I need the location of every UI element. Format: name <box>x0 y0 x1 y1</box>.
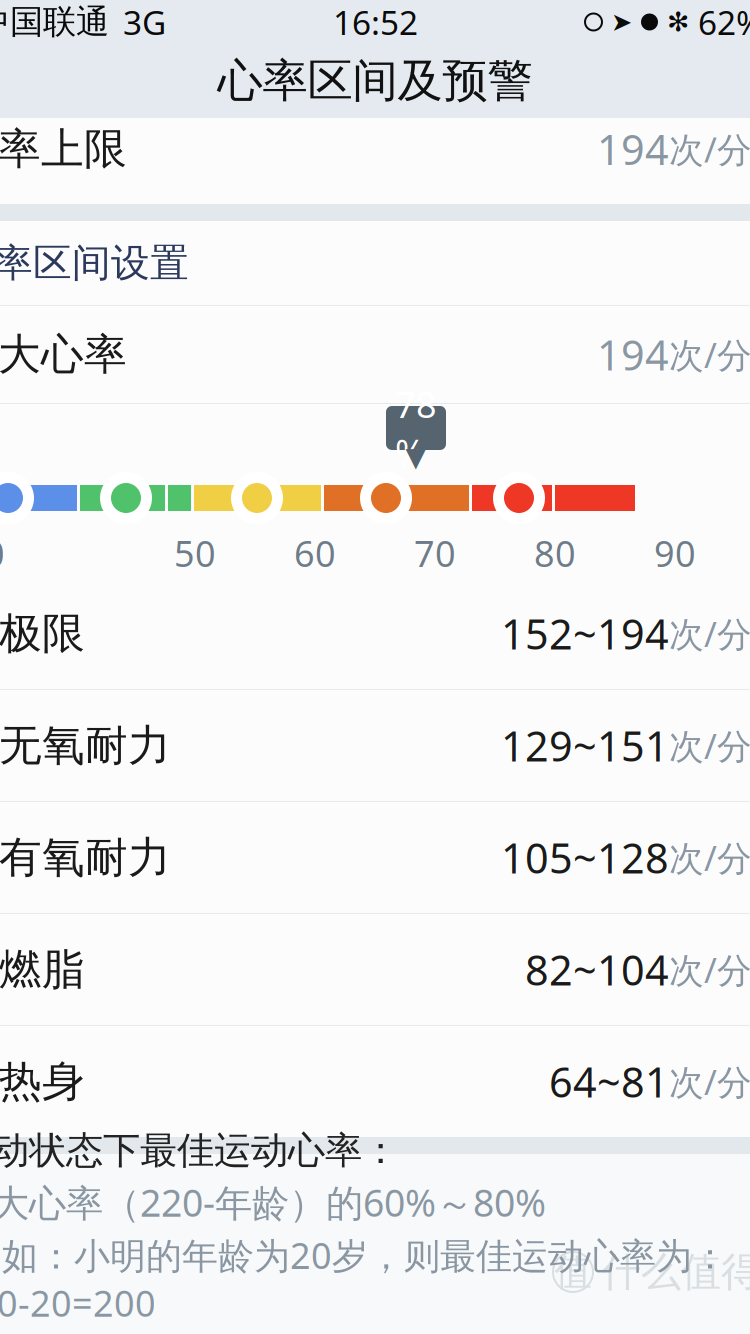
staticText: ✻ <box>667 7 689 37</box>
button[interactable]: 热身 <box>0 1026 750 1137</box>
staticText: ▼ <box>405 442 426 472</box>
staticText: 燃脂 <box>0 943 85 996</box>
staticText: 194 <box>597 122 669 176</box>
staticText: ➤ <box>611 8 632 36</box>
staticText: 62% <box>698 0 750 44</box>
staticText: 16:52 <box>333 0 418 44</box>
staticText: 次/分 <box>669 126 750 172</box>
staticText: 心率区间设置 <box>0 239 189 287</box>
staticText: 50 <box>174 529 216 577</box>
staticText: 64~81 <box>549 1054 669 1109</box>
staticText: 次/分 <box>669 834 750 880</box>
staticText: 中国联通 <box>0 1 109 42</box>
staticText: 105~128 <box>501 830 669 885</box>
staticText: 最大心率（220-年龄）的60%～80% <box>0 1177 546 1227</box>
button[interactable]: 燃脂 <box>0 914 750 1025</box>
staticText: 什么值得买 <box>601 1247 750 1296</box>
staticText: 80 <box>534 529 576 577</box>
staticText: 次/分 <box>669 946 750 992</box>
button[interactable]: 最大心率 <box>0 306 750 403</box>
staticText: 3G <box>123 0 166 44</box>
staticText: 热身 <box>0 1055 85 1108</box>
staticText: 运动状态下最佳运动心率： <box>0 1128 399 1174</box>
staticText: 次/分 <box>669 722 750 768</box>
staticText: 30 <box>0 529 5 577</box>
button[interactable]: 心率上限 <box>0 118 750 180</box>
button[interactable]: 无氧耐力 <box>0 690 750 801</box>
staticText: 152~194 <box>501 606 669 661</box>
staticText: 有氧耐力 <box>0 831 171 884</box>
staticText: 194 <box>597 327 669 382</box>
staticText: 例如：小明的年龄为20岁，则最佳运动心率为：220-20=200 <box>0 1231 728 1327</box>
staticText: 90 <box>654 529 696 577</box>
staticText: 60 <box>294 529 336 577</box>
staticText: 值 <box>554 1249 591 1295</box>
staticText: 心率区间及预警 <box>217 53 532 109</box>
button[interactable]: 极限 <box>0 578 750 689</box>
staticText: 78% <box>395 380 437 476</box>
button[interactable]: 有氧耐力 <box>0 802 750 913</box>
staticText: 70 <box>414 529 456 577</box>
staticText: 129~151 <box>501 718 669 773</box>
staticText: 次/分 <box>669 1058 750 1104</box>
staticText: 心率上限 <box>0 123 127 175</box>
staticText: 最大心率 <box>0 328 127 381</box>
staticText: 无氧耐力 <box>0 719 171 772</box>
staticText: 次/分 <box>669 610 750 656</box>
staticText: 次/分 <box>669 331 750 377</box>
staticText: 82~104 <box>525 942 669 997</box>
staticText: 极限 <box>0 607 85 660</box>
